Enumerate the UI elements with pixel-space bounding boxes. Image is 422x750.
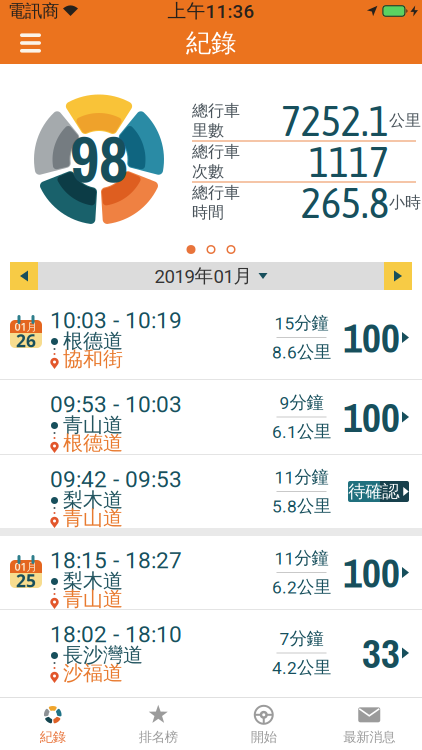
staticText: 青山道 — [63, 506, 123, 530]
button[interactable]: 18:02 - 18:10 — [0, 610, 422, 696]
staticText: 紀錄 — [40, 729, 66, 745]
staticText: 青山道 — [63, 587, 123, 611]
staticText: 待確認 — [348, 481, 399, 502]
staticText: 根德道 — [63, 329, 123, 353]
button[interactable]: 09:42 - 09:53 — [0, 455, 422, 528]
staticText: 26 — [16, 329, 36, 352]
button[interactable]: 紀錄 — [0, 704, 105, 745]
staticText: 7分鐘 — [279, 628, 323, 649]
staticText: 01月 — [14, 559, 37, 574]
staticText: 排名榜 — [139, 729, 178, 745]
staticText: 總行車 — [192, 101, 240, 120]
staticText: 4.2公里 — [272, 656, 331, 678]
staticText: 100 — [343, 310, 400, 365]
staticText: 6.1公里 — [272, 420, 331, 442]
staticText: 里數 — [192, 120, 224, 140]
staticText: 100 — [343, 389, 400, 445]
staticText: 10:03 - 10:19 — [50, 307, 182, 334]
staticText: 最新消息 — [343, 729, 395, 745]
staticText: 小時 — [389, 193, 421, 212]
button[interactable]: 下一個月 — [384, 262, 412, 290]
staticText: 公里 — [389, 111, 421, 130]
staticText: 6.2公里 — [272, 576, 331, 598]
staticText: 8.6公里 — [272, 341, 331, 363]
staticText: 總行車 — [192, 142, 240, 161]
staticText: 開始 — [251, 729, 277, 745]
staticText: 100 — [343, 545, 400, 600]
button[interactable]: 01月 — [0, 536, 422, 609]
staticText: 紀錄 — [186, 27, 236, 58]
staticText: 協和街 — [63, 347, 123, 371]
staticText: 18:15 - 18:27 — [50, 547, 182, 574]
button[interactable]: 開始 — [211, 704, 316, 745]
button[interactable]: 排名榜 — [105, 704, 211, 745]
button[interactable]: 上一個月 — [10, 262, 38, 290]
staticText: 根德道 — [63, 431, 123, 455]
button[interactable]: 選單 — [0, 27, 41, 59]
button[interactable]: 09:53 - 10:03 — [0, 380, 422, 454]
staticText: 98 — [70, 115, 128, 202]
staticText: 梨木道 — [63, 488, 123, 512]
staticText: 次數 — [192, 161, 224, 181]
button[interactable]: 01月 — [0, 296, 422, 379]
staticText: 25 — [16, 569, 36, 592]
staticText: 09:53 - 10:03 — [50, 391, 182, 418]
staticText: 長沙灣道 — [63, 643, 143, 667]
staticText: 9分鐘 — [279, 392, 323, 413]
staticText: 5.8公里 — [272, 495, 331, 517]
staticText: 2019年01月 — [154, 264, 252, 288]
staticText: 11分鐘 — [274, 466, 328, 488]
staticText: 時間 — [192, 202, 224, 222]
staticText: 01月 — [14, 319, 37, 334]
staticText: 33 — [362, 625, 400, 681]
staticText: 上午11:36 — [167, 0, 254, 23]
staticText: 總行車 — [192, 183, 240, 202]
staticText: 11分鐘 — [274, 547, 328, 569]
staticText: 電訊商 — [8, 0, 59, 22]
button[interactable]: 選擇月份 — [38, 262, 384, 290]
staticText: 青山道 — [63, 413, 123, 437]
staticText: 7252.1 — [281, 96, 389, 145]
staticText: 18:02 - 18:10 — [50, 621, 182, 648]
staticText: 梨木道 — [63, 569, 123, 593]
staticText: 沙福道 — [63, 661, 123, 685]
button[interactable]: 最新消息 — [316, 704, 422, 745]
staticText: 265.8 — [301, 178, 389, 227]
staticText: 1117 — [309, 137, 389, 186]
staticText: 09:42 - 09:53 — [50, 466, 182, 493]
staticText: 15分鐘 — [274, 312, 328, 334]
